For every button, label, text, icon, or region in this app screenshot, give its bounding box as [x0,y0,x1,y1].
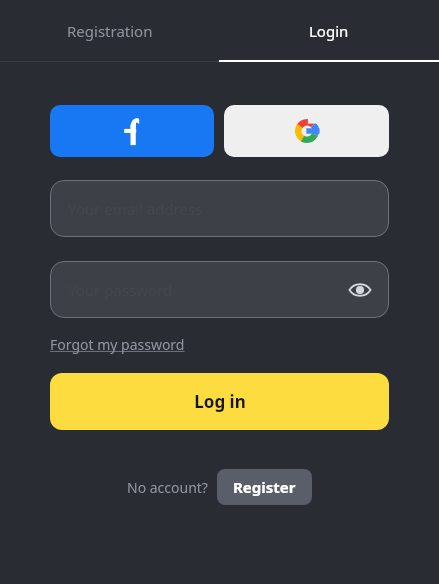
staticText: No account? [127,478,208,497]
button[interactable]: Registration [0,0,219,62]
button[interactable]: Register [217,469,312,505]
staticText: Log in [194,390,246,413]
button[interactable]: Sign in with Google [224,105,389,157]
staticText: Registration [67,21,153,41]
button[interactable]: Sign in with Facebook [50,105,214,157]
button[interactable]: Forgot my password [50,335,185,354]
button[interactable]: Show password [343,273,377,307]
button[interactable]: Log in [50,373,389,430]
staticText: Register [233,477,296,497]
button[interactable]: Your email address [50,180,389,237]
button[interactable]: Your password [50,261,389,318]
staticText: Forgot my password [50,335,185,354]
button[interactable]: Login [219,0,439,62]
staticText: Login [309,21,349,41]
